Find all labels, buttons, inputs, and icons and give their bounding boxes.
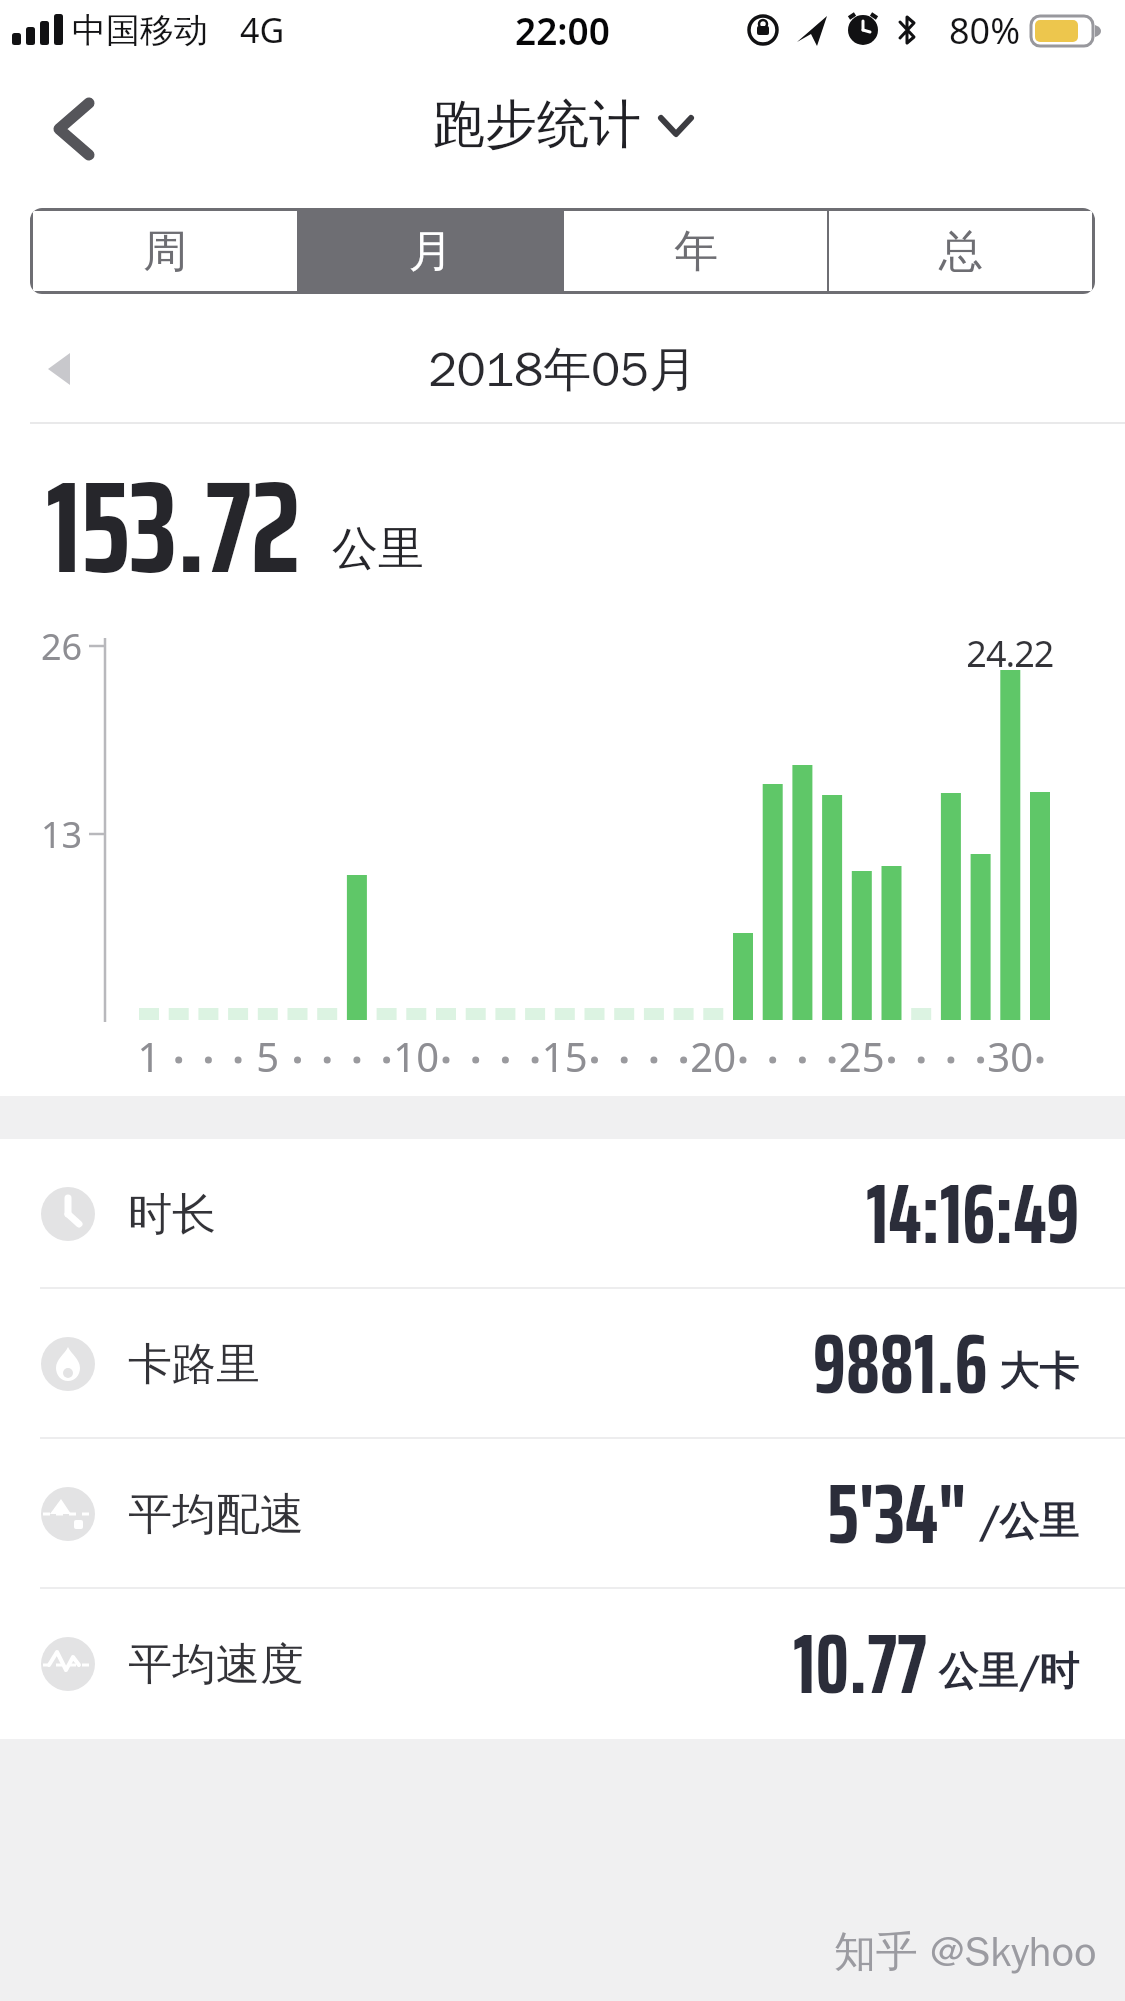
staticText: 22:00 xyxy=(515,5,610,55)
button[interactable] xyxy=(48,353,72,387)
button[interactable]: 卡路里 xyxy=(0,1289,1125,1439)
staticText: 中国移动 xyxy=(72,9,208,52)
button[interactable]: 平均配速 xyxy=(0,1439,1125,1589)
staticText: 总 xyxy=(939,224,983,279)
button[interactable]: 时长 xyxy=(0,1139,1125,1289)
staticText: 卡路里 xyxy=(128,1337,260,1392)
staticText: 跑步统计 xyxy=(433,92,641,158)
staticText: 9881.6 xyxy=(813,1298,988,1430)
staticText: 年 xyxy=(674,224,718,279)
button[interactable]: 年 xyxy=(564,211,827,291)
staticText: 时长 xyxy=(128,1187,216,1242)
staticText: 公里/时 xyxy=(939,1645,1080,1695)
staticText: 4G xyxy=(240,7,285,53)
staticText: 153.72 xyxy=(46,424,301,629)
staticText: 知乎 @Skyhoo xyxy=(834,1926,1097,1979)
staticText: /公里 xyxy=(979,1495,1080,1545)
staticText: 平均配速 xyxy=(128,1487,304,1542)
staticText: 大卡 xyxy=(1000,1345,1080,1395)
button[interactable]: 总 xyxy=(829,211,1092,291)
staticText: 周 xyxy=(143,224,187,279)
button[interactable]: 跑步统计 xyxy=(433,92,693,158)
staticText: 10.77 xyxy=(793,1598,927,1730)
staticText: 80% xyxy=(949,6,1021,55)
button[interactable]: 平均速度 xyxy=(0,1589,1125,1739)
staticText: 平均速度 xyxy=(128,1637,304,1692)
staticText: 14:16:49 xyxy=(866,1148,1080,1280)
button[interactable]: 周 xyxy=(33,211,297,291)
staticText: 2018年05月 xyxy=(428,340,697,400)
staticText: 5'34" xyxy=(827,1448,967,1580)
staticText: 公里 xyxy=(332,520,424,578)
staticText: 月 xyxy=(409,224,453,279)
button[interactable]: 月 xyxy=(299,211,562,291)
button[interactable] xyxy=(49,103,101,155)
